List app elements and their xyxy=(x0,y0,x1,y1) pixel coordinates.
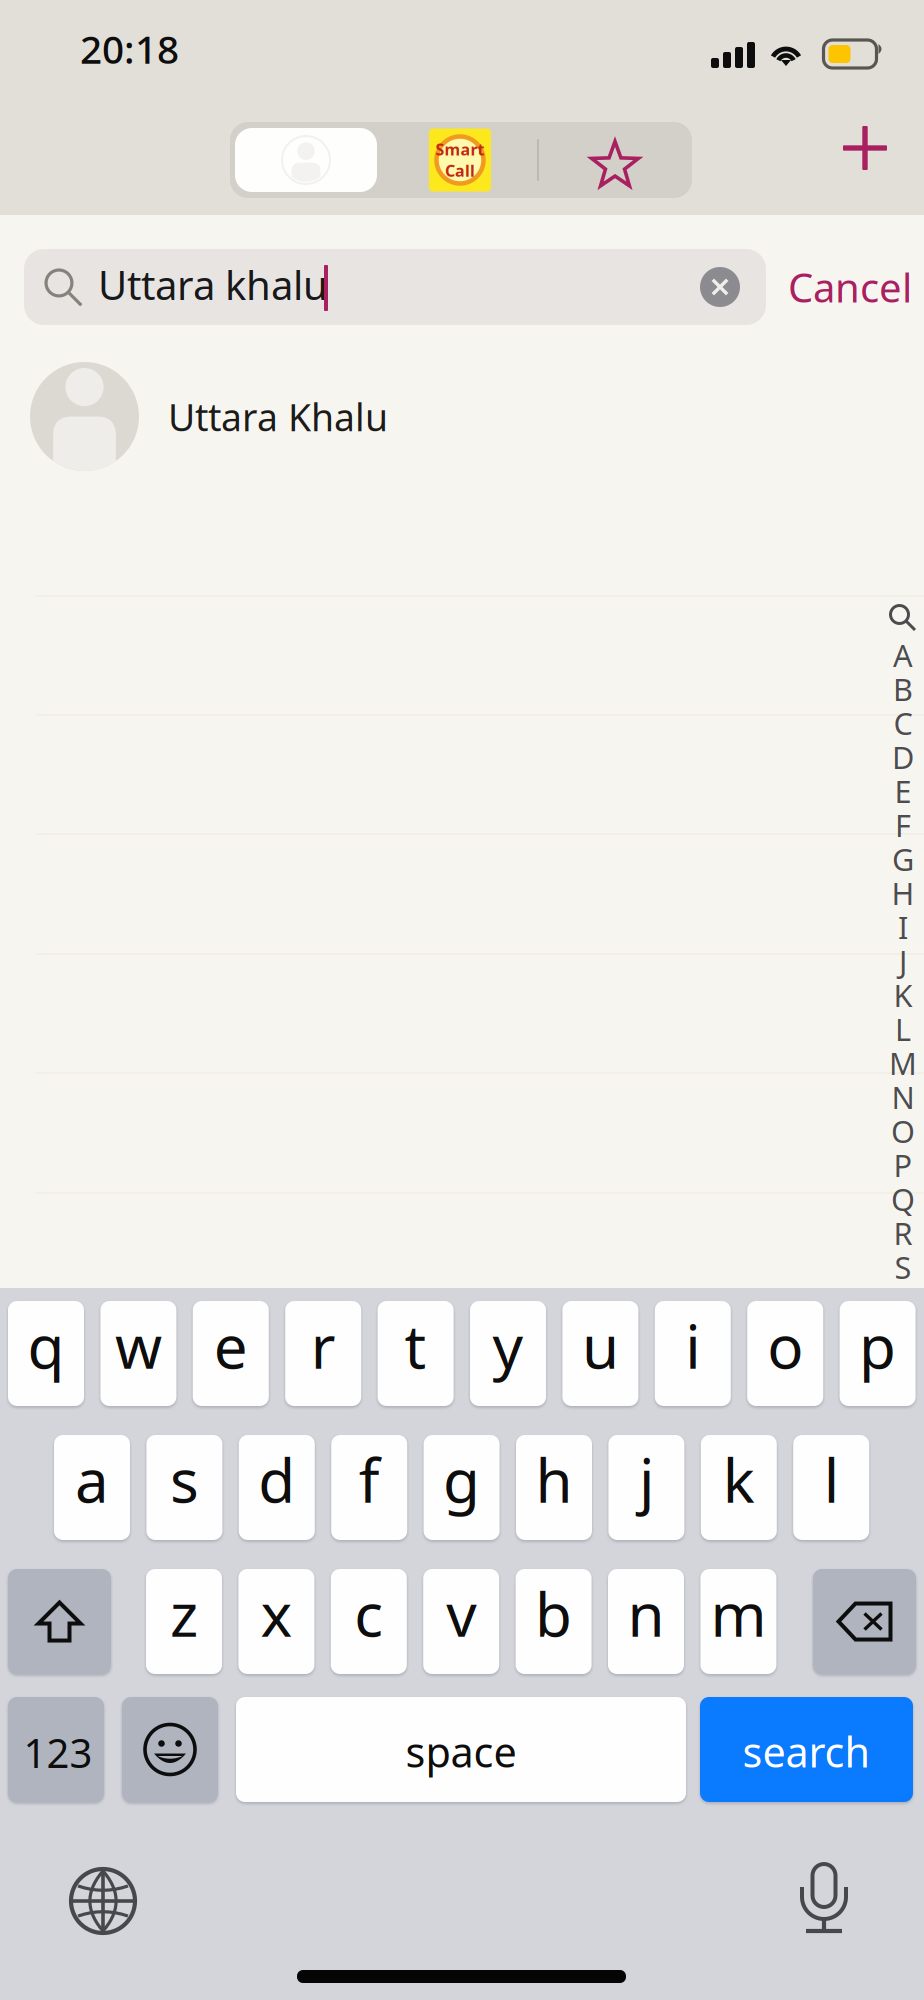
staticText: m xyxy=(710,1574,766,1653)
staticText: F xyxy=(895,805,911,845)
staticText: t xyxy=(405,1306,427,1385)
button[interactable]: Favourites xyxy=(555,128,675,204)
button[interactable]: Delete xyxy=(813,1569,916,1674)
staticText: E xyxy=(894,771,911,811)
staticText: j xyxy=(639,1440,654,1519)
button[interactable]: Contacts xyxy=(235,128,377,192)
button[interactable]: l xyxy=(793,1435,869,1540)
staticText: I xyxy=(898,907,908,947)
button[interactable]: space xyxy=(236,1697,686,1802)
staticText: z xyxy=(170,1574,198,1653)
button[interactable]: Cancel xyxy=(776,249,924,325)
button[interactable]: h xyxy=(516,1435,592,1540)
button[interactable]: y xyxy=(470,1301,546,1406)
button[interactable]: Uttara Khalu xyxy=(0,353,924,481)
staticText: Smart xyxy=(435,139,484,160)
button[interactable]: Shift xyxy=(8,1569,111,1674)
staticText: L xyxy=(895,1009,911,1049)
button[interactable]: p xyxy=(840,1301,916,1406)
staticText: d xyxy=(258,1440,295,1519)
button[interactable]: o xyxy=(747,1301,823,1406)
staticText: a xyxy=(75,1440,109,1519)
staticText: n xyxy=(627,1574,664,1653)
staticText: x xyxy=(260,1574,292,1653)
staticText: h xyxy=(535,1440,572,1519)
button[interactable]: k xyxy=(701,1435,777,1540)
staticText: c xyxy=(354,1574,383,1653)
staticText: Uttara Khalu xyxy=(168,392,388,442)
staticText: i xyxy=(685,1306,700,1385)
staticText: H xyxy=(891,873,914,913)
button[interactable]: c xyxy=(331,1569,407,1674)
button[interactable]: v xyxy=(423,1569,499,1674)
staticText: y xyxy=(492,1306,523,1385)
staticText: J xyxy=(899,941,907,981)
button[interactable]: s xyxy=(146,1435,222,1540)
button[interactable]: g xyxy=(424,1435,500,1540)
button[interactable]: d xyxy=(239,1435,315,1540)
button[interactable]: Add contact xyxy=(817,100,913,196)
staticText: P xyxy=(893,1145,912,1185)
staticText: r xyxy=(311,1306,336,1385)
staticText: f xyxy=(359,1440,380,1519)
staticText: b xyxy=(535,1574,572,1653)
staticText: N xyxy=(891,1077,914,1117)
button[interactable]: q xyxy=(8,1301,84,1406)
staticText: g xyxy=(443,1440,480,1519)
staticText: k xyxy=(723,1440,755,1519)
staticText: Call xyxy=(445,160,475,181)
button[interactable]: e xyxy=(193,1301,269,1406)
staticText: e xyxy=(214,1306,248,1385)
staticText: s xyxy=(170,1440,199,1519)
button[interactable]: Change keyboard xyxy=(57,1855,149,1947)
button[interactable]: b xyxy=(516,1569,592,1674)
staticText: K xyxy=(893,975,912,1015)
staticText: 20:18 xyxy=(80,23,179,74)
button[interactable]: n xyxy=(608,1569,684,1674)
button[interactable]: z xyxy=(146,1569,222,1674)
button[interactable]: m xyxy=(700,1569,776,1674)
staticText: R xyxy=(893,1213,912,1253)
staticText: Q xyxy=(891,1179,915,1219)
button[interactable]: Emoji xyxy=(122,1697,218,1802)
staticText: l xyxy=(824,1440,839,1519)
button[interactable]: x xyxy=(238,1569,314,1674)
staticText: S xyxy=(894,1247,911,1287)
staticText: Cancel xyxy=(788,260,912,313)
button[interactable]: r xyxy=(285,1301,361,1406)
button[interactable]: j xyxy=(608,1435,684,1540)
staticText: D xyxy=(892,737,914,777)
staticText: w xyxy=(115,1306,162,1385)
staticText: v xyxy=(446,1574,476,1653)
button[interactable]: t xyxy=(378,1301,454,1406)
button[interactable]: u xyxy=(562,1301,638,1406)
staticText: q xyxy=(27,1306,64,1385)
button[interactable]: a xyxy=(54,1435,130,1540)
button[interactable]: w xyxy=(100,1301,176,1406)
button[interactable]: 123 xyxy=(8,1697,104,1802)
staticText: 123 xyxy=(23,1726,92,1779)
button[interactable]: Clear text xyxy=(688,249,752,325)
staticText: A xyxy=(893,635,913,675)
staticText: O xyxy=(891,1111,915,1151)
staticText: Uttara khalu xyxy=(98,258,328,311)
button[interactable]: Smart Call xyxy=(414,122,506,198)
staticText: C xyxy=(893,703,912,743)
staticText: search xyxy=(742,1724,870,1779)
staticText: B xyxy=(893,669,913,709)
staticText: p xyxy=(859,1306,896,1385)
staticText: u xyxy=(582,1306,619,1385)
staticText: G xyxy=(892,839,914,879)
button[interactable]: f xyxy=(331,1435,407,1540)
button[interactable]: i xyxy=(655,1301,731,1406)
staticText: M xyxy=(889,1043,917,1083)
staticText: o xyxy=(767,1306,803,1385)
button[interactable]: Dictation xyxy=(778,1853,870,1945)
staticText: space xyxy=(405,1724,516,1779)
button[interactable]: search xyxy=(700,1697,913,1802)
